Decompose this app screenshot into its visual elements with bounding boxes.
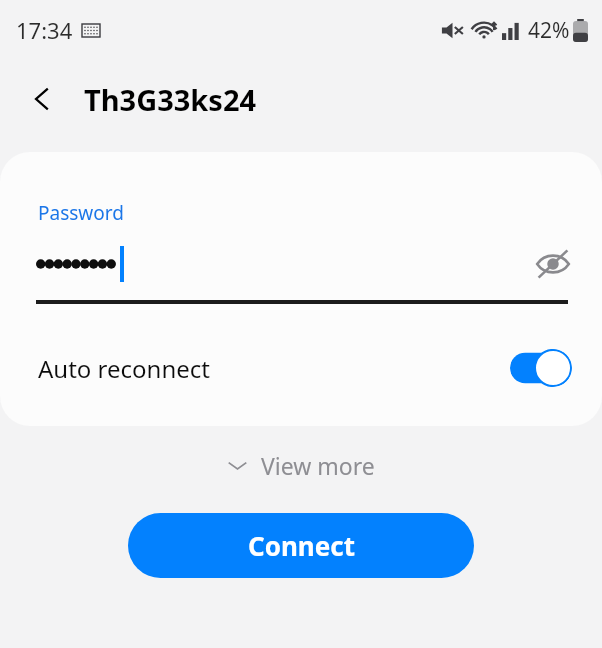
button[interactable]: Auto reconnect (0, 332, 602, 404)
staticText: Auto reconnect (38, 352, 210, 385)
staticText: Th3G33ks24 (84, 80, 257, 119)
staticText: 42% (528, 16, 570, 45)
staticText: View more (261, 450, 375, 481)
button[interactable]: Show password (530, 241, 576, 287)
button[interactable]: Show password (0, 238, 602, 290)
staticText: 17:34 (16, 15, 73, 45)
staticText: Password (38, 200, 124, 226)
button[interactable]: Auto reconnect (510, 349, 572, 387)
staticText: Connect (248, 528, 355, 563)
button[interactable]: Back (20, 76, 66, 122)
button[interactable]: View more (211, 444, 391, 487)
button[interactable]: Connect (128, 513, 474, 578)
